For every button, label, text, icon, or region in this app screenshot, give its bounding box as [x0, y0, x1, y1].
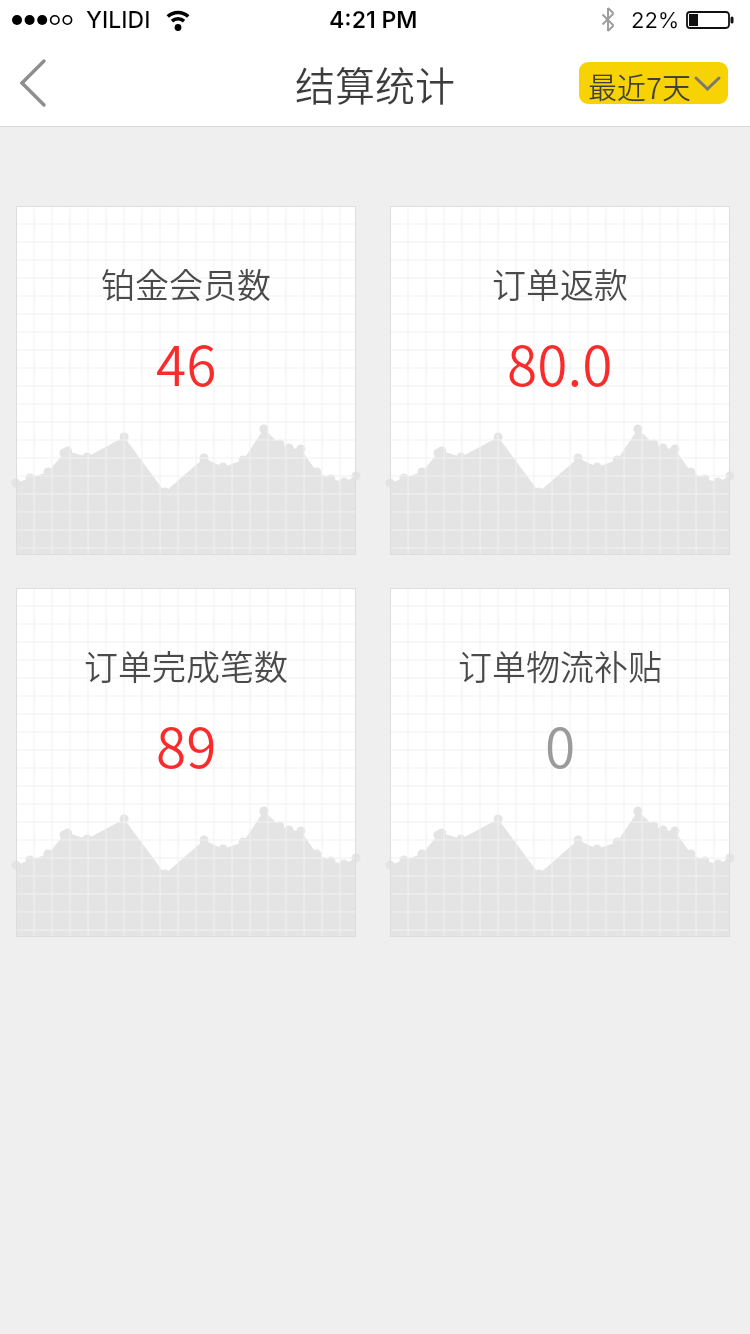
staticText: 结算统计 [295, 55, 455, 113]
staticText: 80.0 [507, 322, 613, 402]
staticText: 89 [156, 704, 217, 784]
staticText: 最近7天 [588, 65, 691, 104]
staticText: 46 [156, 322, 217, 402]
staticText: 订单物流补贴 [458, 641, 662, 690]
staticText: 订单完成笔数 [84, 641, 288, 690]
staticText: 4:21 PM [329, 6, 418, 34]
staticText: 订单返款 [492, 259, 628, 308]
staticText: 0 [545, 704, 576, 784]
staticText: YILIDI [86, 6, 151, 34]
staticText: 铂金会员数 [101, 259, 271, 308]
staticText: 22% [631, 7, 680, 34]
